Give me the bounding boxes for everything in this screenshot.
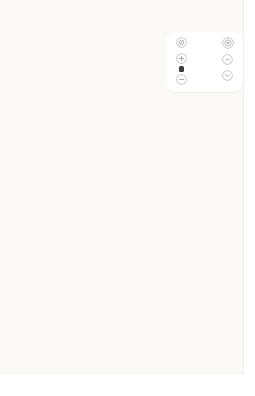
button[interactable]: Zoom out [176, 74, 187, 85]
button[interactable]: Center on location [222, 37, 234, 49]
button[interactable]: Zoom level [179, 66, 184, 72]
button[interactable]: Tilt up [222, 54, 233, 65]
button[interactable]: Zoom in [176, 53, 187, 64]
button[interactable]: Tilt down [222, 70, 233, 81]
button[interactable]: Locate me [176, 37, 187, 48]
